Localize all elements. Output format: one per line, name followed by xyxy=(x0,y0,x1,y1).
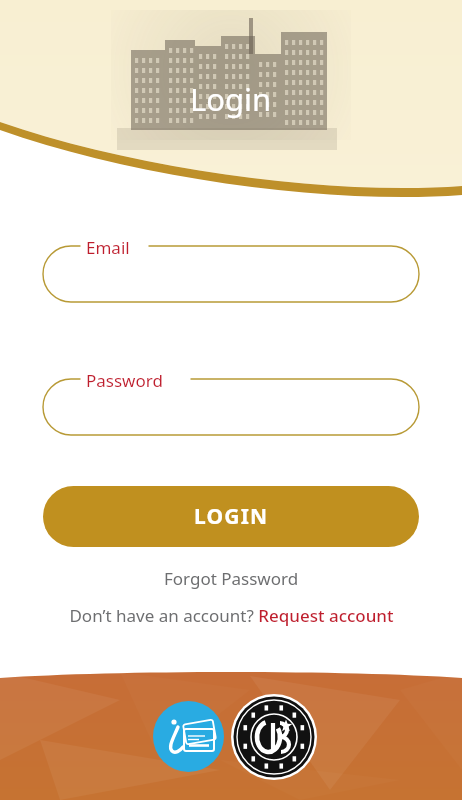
staticText: Password xyxy=(86,369,163,392)
staticText: Email xyxy=(86,236,130,259)
button[interactable]: Forgot Password xyxy=(141,564,321,592)
staticText: Login xyxy=(190,78,272,120)
button[interactable]: Coldwell Banker Global Luxury xyxy=(231,694,317,780)
button[interactable]: Don’t have an account? Request account xyxy=(40,601,422,629)
staticText: LOGIN xyxy=(194,502,269,531)
button[interactable]: LOGIN xyxy=(43,486,419,547)
button[interactable]: Email xyxy=(43,246,419,302)
staticText: Don’t have an account? Request account xyxy=(69,604,394,627)
button[interactable]: Password xyxy=(43,379,419,435)
button[interactable]: iCard xyxy=(153,701,224,772)
staticText: Forgot Password xyxy=(164,567,299,590)
